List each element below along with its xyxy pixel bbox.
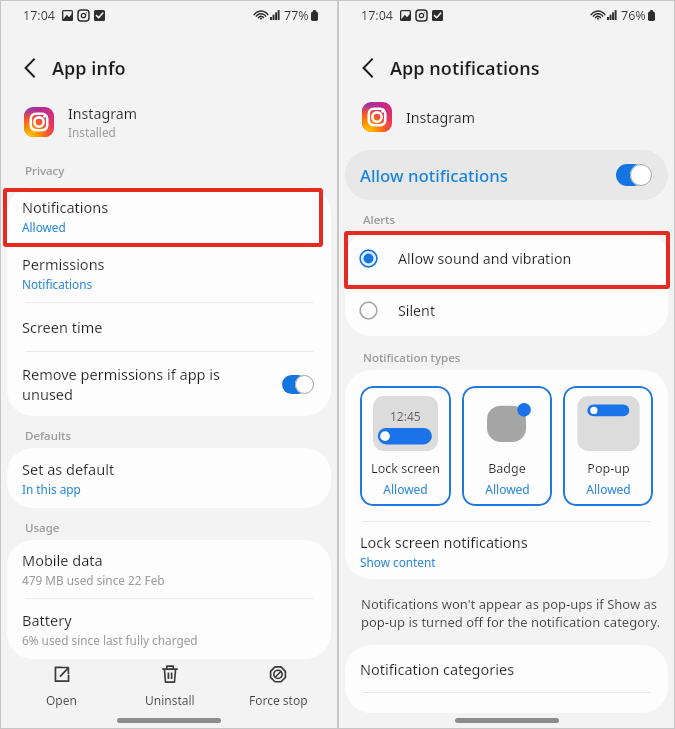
staticText: Notification categories xyxy=(360,659,515,679)
button[interactable]: Back xyxy=(15,53,45,83)
staticText: Show content xyxy=(360,554,436,570)
staticText: Notifications xyxy=(22,197,109,217)
staticText: Allowed xyxy=(383,481,428,497)
staticText: 17:04 xyxy=(23,7,55,24)
staticText: Uninstall xyxy=(145,692,195,708)
button[interactable]: Set as default xyxy=(7,448,331,508)
button[interactable]: Back xyxy=(353,53,383,83)
staticText: Installed xyxy=(68,124,116,140)
staticText: 479 MB used since 22 Feb xyxy=(22,572,165,588)
staticText: Instagram xyxy=(406,108,475,127)
button[interactable]: Silent xyxy=(345,284,668,336)
staticText: 76% xyxy=(621,7,646,24)
button[interactable]: Force stop xyxy=(224,659,332,713)
staticText: Open xyxy=(46,692,77,708)
button[interactable]: Battery xyxy=(7,599,331,659)
button[interactable]: Mobile data xyxy=(7,540,331,598)
staticText: Remove permissions if app is unused xyxy=(22,364,237,404)
staticText: Lock screen notifications xyxy=(360,532,528,552)
staticText: Instagram xyxy=(68,104,137,123)
staticText: Set as default xyxy=(22,459,115,479)
staticText: Screen time xyxy=(22,317,103,337)
staticText: 12:45 xyxy=(390,408,421,424)
staticText: Privacy xyxy=(25,163,65,179)
button[interactable]: Allow sound and vibration xyxy=(345,232,668,284)
staticText: Mobile data xyxy=(22,550,103,570)
button[interactable] xyxy=(616,164,652,186)
staticText: 77% xyxy=(284,7,309,24)
staticText: Allowed xyxy=(22,219,66,235)
staticText: Badge xyxy=(488,460,526,477)
button[interactable] xyxy=(282,375,314,394)
button[interactable]: Permissions xyxy=(7,244,331,302)
staticText: Battery xyxy=(22,610,72,630)
button[interactable]: Remove permissions if app is unused xyxy=(7,352,331,416)
staticText: 17:04 xyxy=(361,7,393,24)
staticText: Notifications won't appear as pop-ups if… xyxy=(361,595,660,631)
staticText: Silent xyxy=(398,301,436,320)
staticText: Permissions xyxy=(22,254,105,274)
button[interactable]: Uninstall xyxy=(116,659,224,713)
staticText: Allowed xyxy=(586,481,631,497)
staticText: Notification types xyxy=(363,350,461,366)
staticText: Defaults xyxy=(25,428,71,444)
staticText: In this app xyxy=(22,481,81,497)
staticText: Allow notifications xyxy=(360,164,616,187)
staticText: Usage xyxy=(25,520,60,536)
button[interactable]: Allow notifications xyxy=(345,150,668,200)
button[interactable]: Open xyxy=(7,659,116,713)
button[interactable]: Notifications xyxy=(7,187,331,244)
staticText: Pop-up xyxy=(587,460,630,477)
button[interactable]: Pop-up xyxy=(563,386,653,506)
staticText: Allowed xyxy=(485,481,530,497)
button[interactable]: Lock screen notifications xyxy=(345,522,668,579)
staticText: 6% used since last fully charged xyxy=(22,632,198,648)
staticText: App notifications xyxy=(390,56,540,81)
button[interactable]: Badge xyxy=(462,386,552,506)
staticText: Notifications xyxy=(22,276,93,292)
button[interactable]: 12:45 xyxy=(360,386,451,506)
button[interactable]: Screen time xyxy=(7,303,331,351)
staticText: Alerts xyxy=(363,212,396,228)
button[interactable]: Notification categories xyxy=(345,645,668,692)
staticText: Lock screen xyxy=(371,460,440,477)
staticText: Allow sound and vibration xyxy=(398,249,572,268)
staticText: App info xyxy=(52,56,126,81)
staticText: Force stop xyxy=(249,692,308,708)
